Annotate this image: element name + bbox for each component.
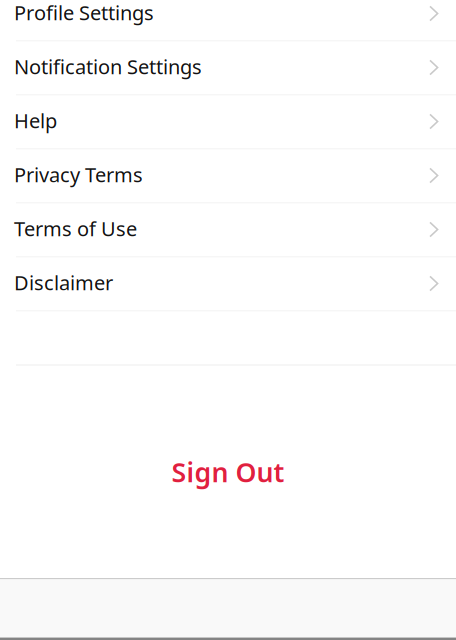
- button[interactable]: Notification Settings: [0, 41, 456, 95]
- staticText: Notification Settings: [14, 53, 202, 80]
- button[interactable]: Privacy Terms: [0, 149, 456, 203]
- button[interactable]: Main Page: [0, 600, 152, 640]
- staticText: Sign Out: [171, 454, 284, 490]
- button[interactable]: Disclaimer: [0, 257, 456, 311]
- staticText: Privacy Terms: [14, 161, 143, 188]
- button[interactable]: Map: [152, 600, 304, 640]
- button[interactable]: Help: [0, 95, 456, 149]
- button[interactable]: My Account: [304, 600, 456, 640]
- staticText: Help: [14, 107, 57, 134]
- button[interactable]: Profile Settings: [0, 0, 456, 41]
- button[interactable]: Terms of Use: [0, 203, 456, 257]
- button[interactable]: Sign Out: [0, 450, 456, 494]
- staticText: Profile Settings: [14, 0, 154, 26]
- staticText: Disclaimer: [14, 269, 113, 296]
- staticText: Terms of Use: [14, 215, 137, 242]
